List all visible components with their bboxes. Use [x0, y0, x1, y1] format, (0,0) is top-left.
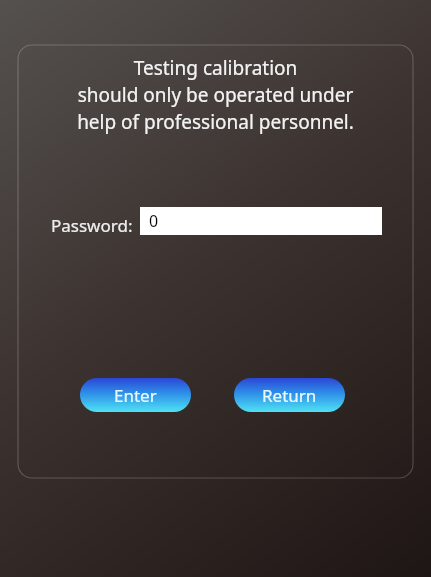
staticText: Password:: [51, 214, 133, 237]
button[interactable]: 0: [140, 207, 382, 235]
button[interactable]: Return: [234, 378, 345, 412]
staticText: 0: [149, 210, 159, 232]
staticText: Testing calibration should only be opera…: [20, 55, 411, 577]
staticText: Return: [262, 384, 317, 407]
staticText: Enter: [114, 384, 157, 407]
button[interactable]: Enter: [80, 378, 191, 412]
